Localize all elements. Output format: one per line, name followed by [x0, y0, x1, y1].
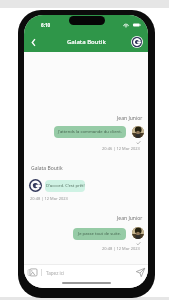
staticText: 6:10 — [41, 22, 51, 28]
staticText: Jean Junior — [117, 115, 143, 122]
staticText: J'attends la commande du client. — [58, 129, 122, 135]
staticText: 20:46 | 12 Mar 2023 — [102, 146, 140, 151]
button[interactable]: J'attends la commande du client. — [54, 126, 126, 138]
staticText: Tapez ici — [46, 270, 65, 276]
button[interactable]: Je passe tout de suite. — [73, 228, 126, 240]
staticText: Je passe tout de suite. — [78, 231, 121, 237]
staticText: 20:48 | 12 Mar 2023 — [102, 246, 140, 251]
staticText: Galata Boutik — [31, 165, 63, 172]
button[interactable]: D'accord. C'est prêt! — [45, 180, 85, 192]
staticText: Jean Junior — [117, 215, 143, 222]
staticText: 20:48 | 12 Mar 2023 — [30, 196, 68, 201]
button[interactable]: Shop profile — [131, 36, 143, 48]
button[interactable]: Send — [135, 267, 146, 278]
staticText: Galata Boutik — [67, 38, 106, 46]
staticText: D'accord. C'est prêt! — [46, 183, 85, 189]
button[interactable]: Attach image — [27, 267, 38, 278]
button[interactable]: Back — [26, 35, 40, 49]
